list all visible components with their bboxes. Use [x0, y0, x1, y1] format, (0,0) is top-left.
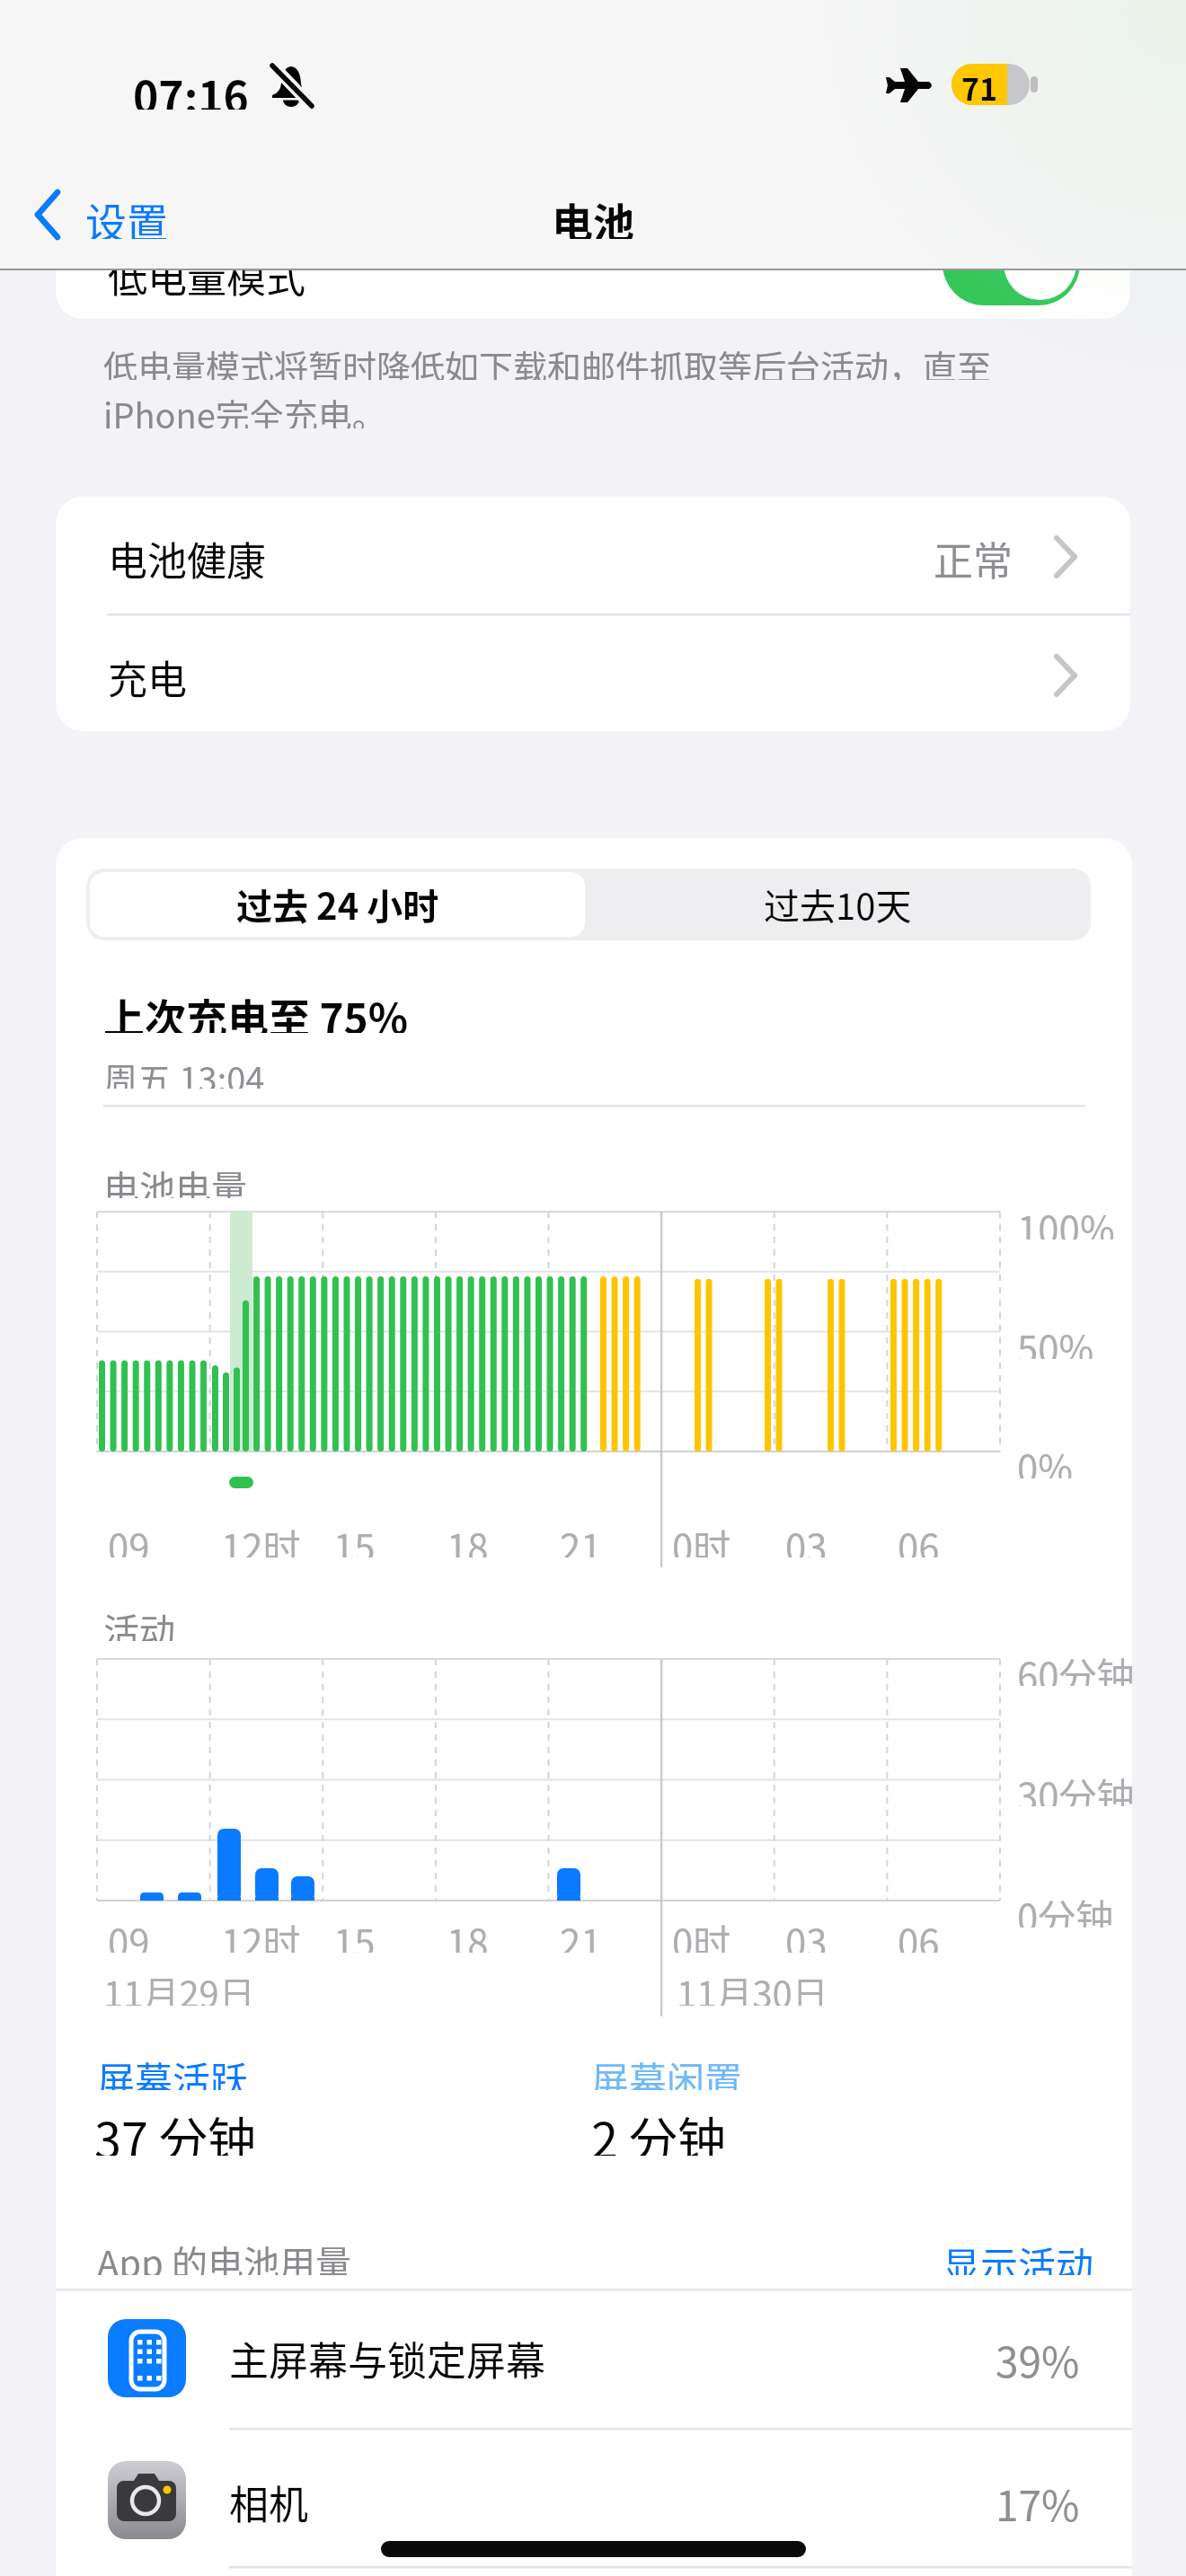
staticText: 0%	[1017, 1439, 1073, 1478]
staticText: 显示活动	[943, 2236, 1094, 2275]
staticText: 活动	[103, 1603, 175, 1641]
staticText: 60分钟	[1017, 1646, 1135, 1686]
staticText: 37 分钟	[94, 2102, 257, 2156]
button[interactable]	[90, 872, 585, 937]
staticText: 低电量模式	[108, 247, 305, 301]
staticText: 屏幕闲置	[591, 2051, 743, 2090]
staticText: 12时	[221, 1518, 301, 1557]
staticText: 电池健康	[108, 530, 266, 584]
staticText: 100%	[1017, 1200, 1115, 1239]
button[interactable]	[56, 614, 1130, 731]
staticText: 09	[108, 1913, 150, 1953]
staticText: App 的电池用量	[97, 2236, 351, 2275]
staticText: 09	[108, 1518, 150, 1557]
staticText: 低电量模式将暂时降低如下载和邮件抓取等后台活动，直至	[103, 340, 992, 380]
staticText: 上次充电至 75%	[103, 986, 409, 1033]
staticText: 21	[560, 1913, 602, 1953]
staticText: 相机	[229, 2474, 308, 2527]
staticText: 18	[447, 1913, 489, 1953]
staticText: 周五 13:04	[103, 1053, 265, 1089]
staticText: 11月29日	[103, 1966, 255, 2006]
staticText: 03	[785, 1913, 828, 1953]
staticText: 18	[447, 1518, 489, 1557]
staticText: 0时	[672, 1518, 731, 1557]
button[interactable]	[18, 180, 198, 251]
button[interactable]	[56, 207, 1130, 319]
staticText: 过去 24 小时	[236, 878, 439, 931]
staticText: 50%	[1017, 1319, 1094, 1359]
staticText: 06	[898, 1518, 940, 1557]
staticText: 充电	[108, 648, 187, 702]
staticText: 过去10天	[764, 878, 912, 931]
staticText: 设置	[85, 190, 168, 239]
staticText: 17%	[996, 2474, 1080, 2527]
staticText: 电池	[552, 190, 634, 239]
staticText: 06	[898, 1913, 940, 1953]
staticText: 39%	[996, 2330, 1080, 2384]
staticText: 11月30日	[677, 1966, 828, 2006]
staticText: 07:16	[133, 63, 249, 110]
staticText: 03	[785, 1518, 828, 1557]
staticText: 71	[961, 66, 998, 103]
button[interactable]	[916, 2228, 1096, 2285]
staticText: 主屏幕与锁定屏幕	[229, 2330, 545, 2384]
staticText: 21	[560, 1518, 602, 1557]
button[interactable]	[56, 2428, 1132, 2572]
staticText: 屏幕活跃	[97, 2051, 249, 2090]
staticText: 0分钟	[1017, 1888, 1114, 1928]
button[interactable]	[86, 869, 1091, 940]
staticText: 12时	[221, 1913, 301, 1953]
staticText: 0时	[672, 1913, 731, 1953]
button[interactable]	[56, 2291, 1132, 2428]
staticText: 30分钟	[1017, 1767, 1135, 1806]
button[interactable]	[943, 222, 1080, 305]
staticText: 2 分钟	[591, 2102, 727, 2156]
staticText: 15	[333, 1518, 376, 1557]
staticText: 电池电量	[103, 1160, 247, 1198]
staticText: 正常	[934, 530, 1013, 584]
staticText: iPhone完全充电。	[103, 389, 386, 428]
staticText: 15	[333, 1913, 376, 1953]
button[interactable]	[56, 497, 1130, 614]
